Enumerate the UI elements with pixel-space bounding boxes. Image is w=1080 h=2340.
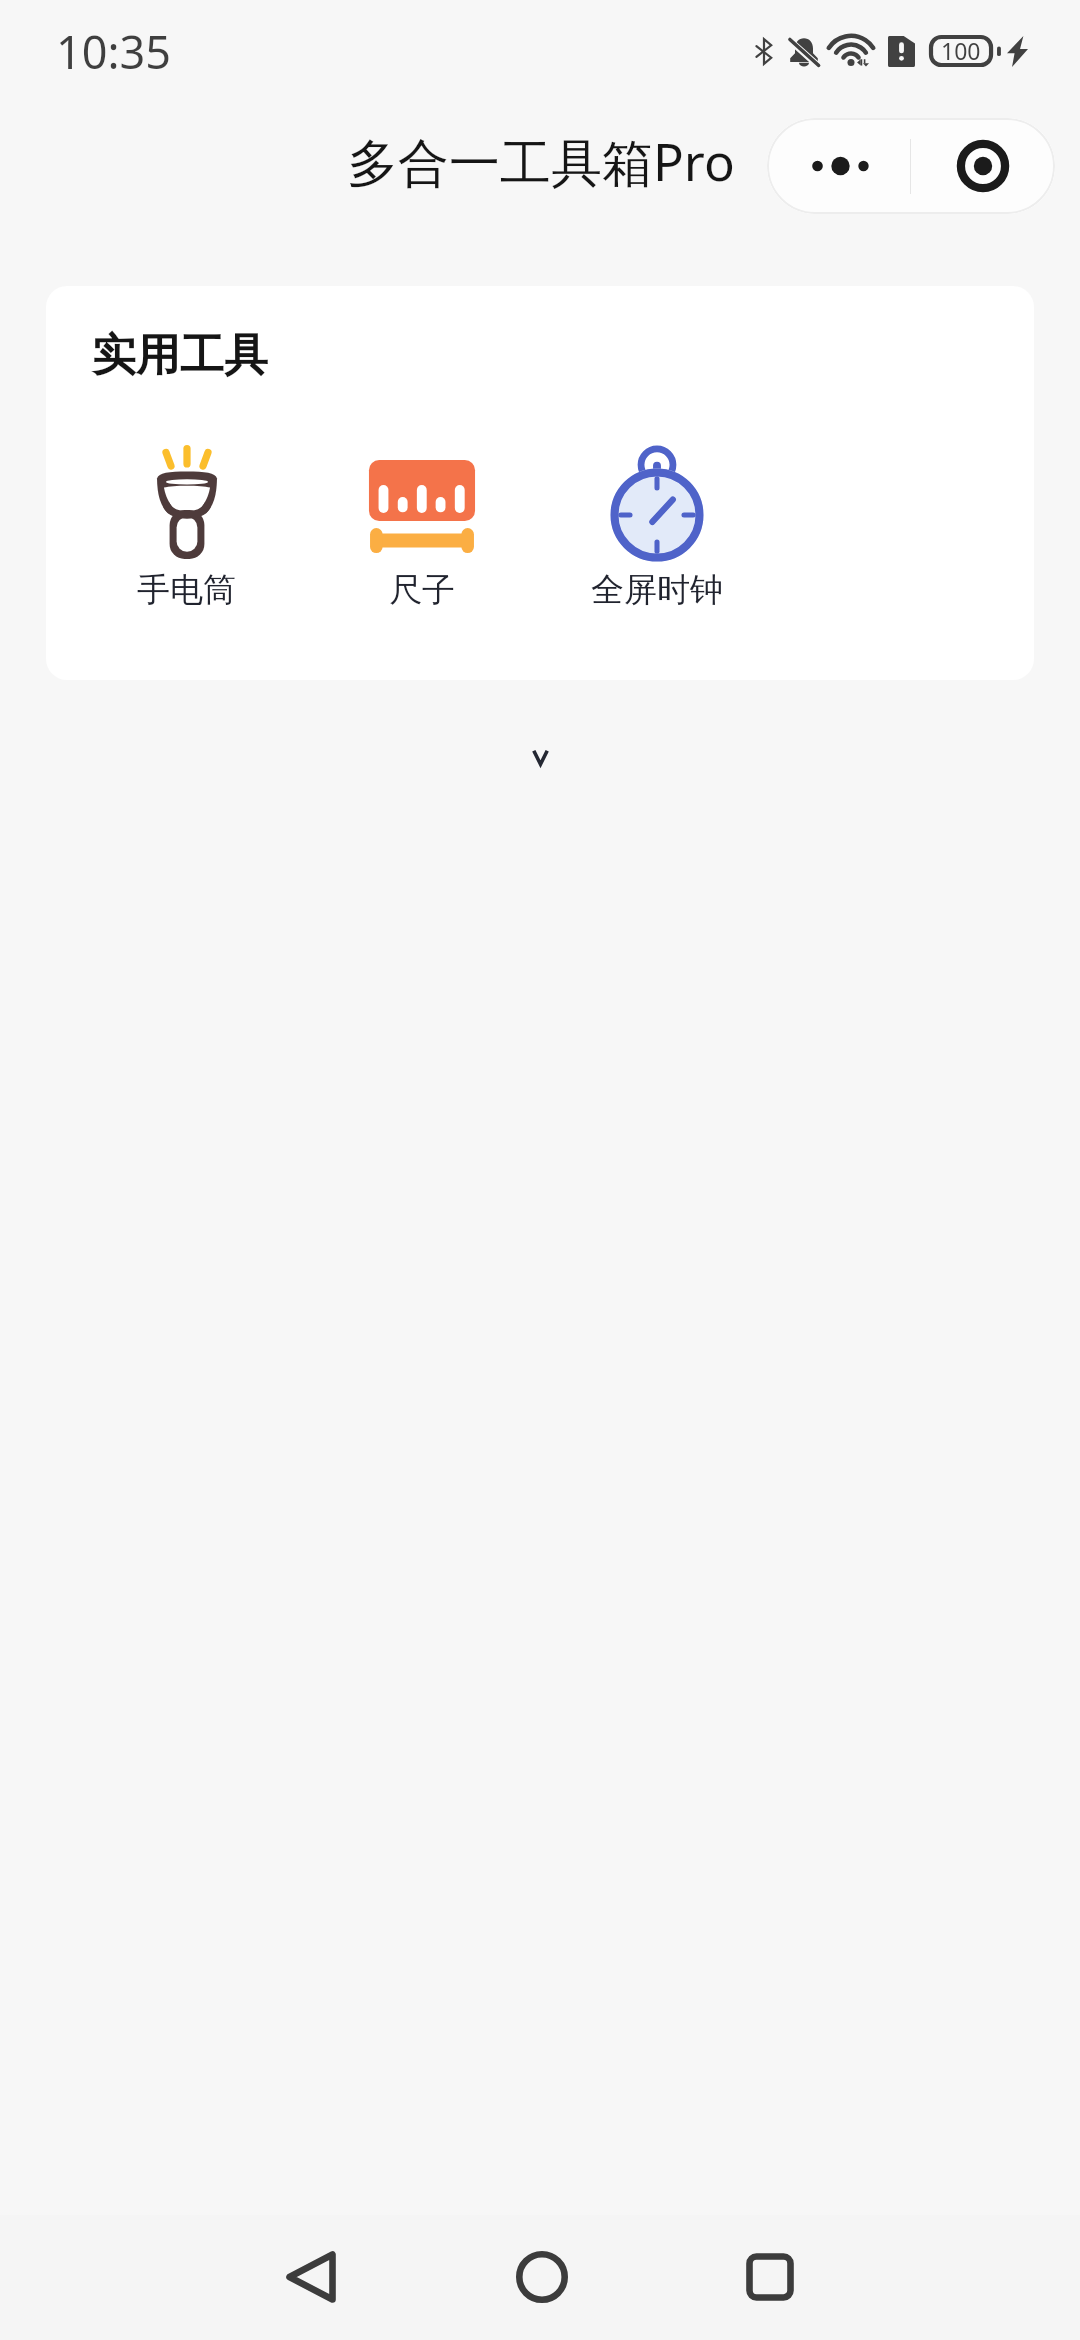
button[interactable]: Expand more	[0, 729, 1080, 785]
button[interactable]: Home	[467, 2214, 617, 2339]
staticText: 全屏时钟	[591, 569, 723, 611]
staticText: 多合一工具箱Pro	[347, 126, 735, 196]
button[interactable]: Back	[236, 2214, 386, 2339]
button[interactable]: Recent apps	[695, 2214, 845, 2339]
button[interactable]: Close mini program	[911, 118, 1055, 214]
button[interactable]: 尺子	[304, 440, 539, 611]
button[interactable]: 全屏时钟	[539, 440, 774, 611]
button[interactable]: More options	[767, 118, 1055, 214]
button[interactable]: 手电筒	[69, 440, 304, 611]
staticText: 实用工具	[92, 328, 268, 383]
staticText: 手电筒	[137, 569, 236, 611]
staticText: 尺子	[389, 569, 455, 611]
button[interactable]: More options	[767, 118, 910, 214]
staticText: 100	[941, 35, 981, 66]
staticText: 10:35	[56, 21, 172, 82]
